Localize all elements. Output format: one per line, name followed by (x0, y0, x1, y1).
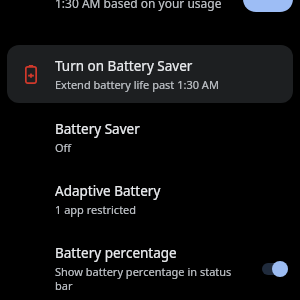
button[interactable]: Battery Saver (0, 114, 300, 160)
button[interactable]: Adaptive Battery (0, 176, 300, 222)
button[interactable]: Battery percentage (0, 240, 300, 298)
staticText: Battery percentage (55, 244, 177, 262)
staticText: Turn on Battery Saver (55, 57, 193, 75)
staticText: Adaptive Battery (55, 182, 161, 200)
button[interactable]: Battery Saver shortcut (243, 0, 293, 12)
staticText: Extend battery life past 1:30 AM (55, 77, 219, 92)
staticText: Off (55, 140, 72, 155)
button[interactable]: Turn on Battery Saver (7, 45, 293, 103)
staticText: 1:30 AM based on your usage (55, 0, 222, 11)
staticText: Show battery percentage in status bar (55, 264, 250, 294)
staticText: 1 app restricted (55, 202, 137, 217)
staticText: Battery Saver (55, 120, 140, 138)
button[interactable]: Battery percentage toggle (262, 261, 288, 277)
